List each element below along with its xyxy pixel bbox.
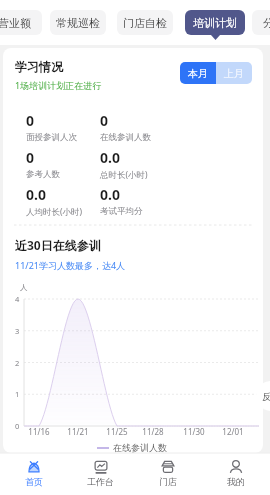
- button[interactable]: 常规巡检: [50, 10, 106, 35]
- button[interactable]: 工作台: [67, 454, 134, 487]
- staticText: 12/01: [222, 426, 244, 437]
- button[interactable]: 分析: [252, 10, 270, 35]
- staticText: 0.0: [100, 185, 120, 204]
- staticText: 人: [20, 283, 28, 292]
- staticText: 2: [15, 358, 20, 368]
- staticText: 本月: [188, 67, 208, 80]
- staticText: 4: [15, 294, 20, 304]
- staticText: 面授参训人次: [26, 132, 77, 143]
- staticText: 参考人数: [26, 169, 60, 180]
- staticText: 3: [15, 326, 20, 336]
- staticText: 11/25: [106, 426, 128, 437]
- staticText: 总时长(小时): [100, 169, 148, 181]
- staticText: 11/16: [28, 426, 50, 437]
- button[interactable]: 门店自检: [117, 10, 173, 35]
- staticText: 常规巡检: [56, 16, 100, 30]
- staticText: 门店自检: [123, 16, 167, 30]
- staticText: 上月: [224, 67, 244, 80]
- staticText: 1场培训计划正在进行: [15, 79, 102, 91]
- button[interactable]: Feedback: [256, 381, 270, 411]
- staticText: 学习情况: [15, 59, 63, 74]
- staticText: 0: [100, 111, 109, 130]
- staticText: 11/21: [67, 426, 89, 437]
- staticText: 首页: [25, 476, 43, 487]
- button[interactable]: 本月: [180, 62, 216, 84]
- staticText: 反馈: [262, 391, 270, 402]
- staticText: 工作台: [87, 476, 114, 487]
- staticText: 培训计划: [193, 16, 237, 30]
- staticText: 11/28: [142, 426, 164, 437]
- staticText: 人均时长(小时): [26, 206, 83, 218]
- staticText: 0: [26, 148, 35, 167]
- staticText: 门店: [159, 476, 177, 487]
- staticText: 0: [26, 111, 35, 130]
- staticText: 11/21学习人数最多，达4人: [15, 259, 126, 271]
- staticText: 我的: [227, 476, 245, 487]
- staticText: 0: [15, 421, 20, 431]
- button[interactable]: 首页: [0, 454, 67, 487]
- staticText: 分析: [263, 16, 270, 30]
- staticText: 在线参训人数: [113, 442, 167, 453]
- button[interactable]: 营业额: [0, 10, 42, 35]
- staticText: 1: [15, 389, 20, 399]
- staticText: 考试平均分: [100, 206, 143, 217]
- button[interactable]: 培训计划: [185, 10, 245, 35]
- button[interactable]: 上月: [216, 62, 252, 84]
- staticText: 0.0: [26, 185, 46, 204]
- staticText: 近30日在线参训: [15, 237, 101, 253]
- button[interactable]: 我的: [202, 454, 270, 487]
- staticText: 0.0: [100, 148, 120, 167]
- button[interactable]: 门店: [134, 454, 202, 487]
- staticText: 营业额: [0, 16, 31, 30]
- staticText: 在线参训人数: [100, 132, 151, 143]
- staticText: 11/30: [183, 426, 205, 437]
